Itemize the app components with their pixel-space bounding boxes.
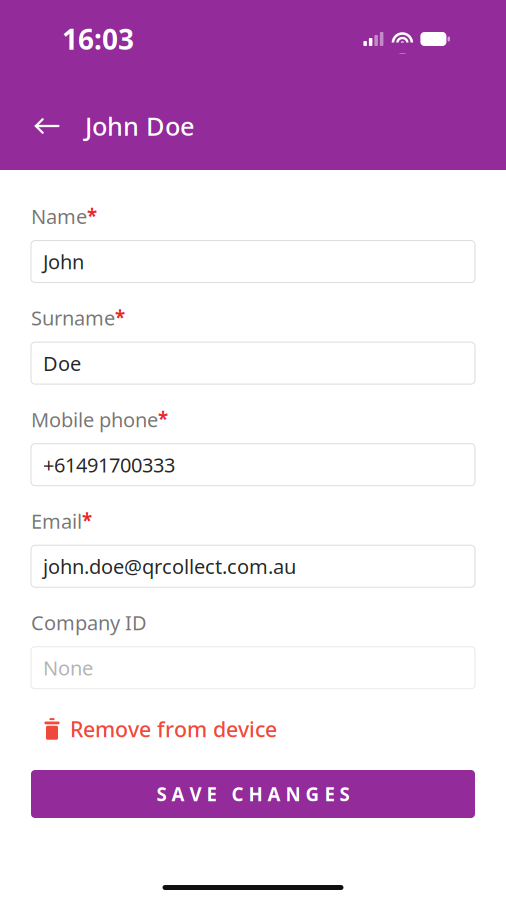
staticText: john.doe@qrcollect.com.au — [43, 553, 296, 580]
button[interactable]: Remove from device — [31, 709, 475, 749]
staticText: Company ID — [31, 609, 147, 636]
staticText: Mobile phone — [31, 406, 158, 433]
staticText: Doe — [43, 350, 81, 376]
staticText: Email — [31, 508, 82, 534]
button[interactable]: Back — [23, 106, 71, 146]
staticText: * — [87, 203, 97, 228]
staticText: Remove from device — [70, 715, 277, 743]
staticText: S A V E C H A N G E S — [156, 782, 349, 806]
staticText: * — [115, 305, 125, 329]
staticText: John — [43, 248, 84, 275]
staticText: 16:03 — [62, 20, 134, 58]
staticText: Surname — [31, 305, 115, 331]
button[interactable]: S A V E C H A N G E S — [31, 770, 475, 818]
staticText: * — [82, 508, 92, 532]
staticText: * — [158, 406, 168, 431]
staticText: John Doe — [85, 109, 195, 143]
staticText: Name — [31, 203, 87, 230]
staticText: +61491700333 — [43, 451, 175, 478]
staticText: None — [43, 654, 93, 681]
